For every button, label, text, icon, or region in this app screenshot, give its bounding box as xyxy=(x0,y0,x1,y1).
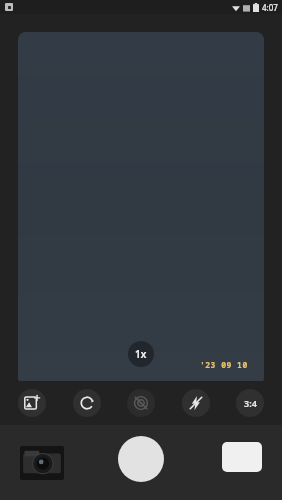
button[interactable]: Mode xyxy=(222,442,262,472)
staticText: '23 09 10 xyxy=(200,359,248,370)
button[interactable]: Aspect ratio 3:4 xyxy=(236,389,264,417)
button[interactable]: Last photo xyxy=(20,446,64,480)
button[interactable]: Filters xyxy=(18,389,46,417)
staticText: 1x xyxy=(135,347,147,361)
staticText: 3:4 xyxy=(244,397,257,409)
button[interactable]: Flash off xyxy=(182,389,210,417)
staticText: 4:07 xyxy=(262,2,278,13)
button[interactable]: Motion photo off xyxy=(127,389,155,417)
button[interactable]: Switch camera xyxy=(73,389,101,417)
button[interactable]: Shutter xyxy=(118,436,164,482)
button[interactable]: 1x xyxy=(128,341,154,367)
